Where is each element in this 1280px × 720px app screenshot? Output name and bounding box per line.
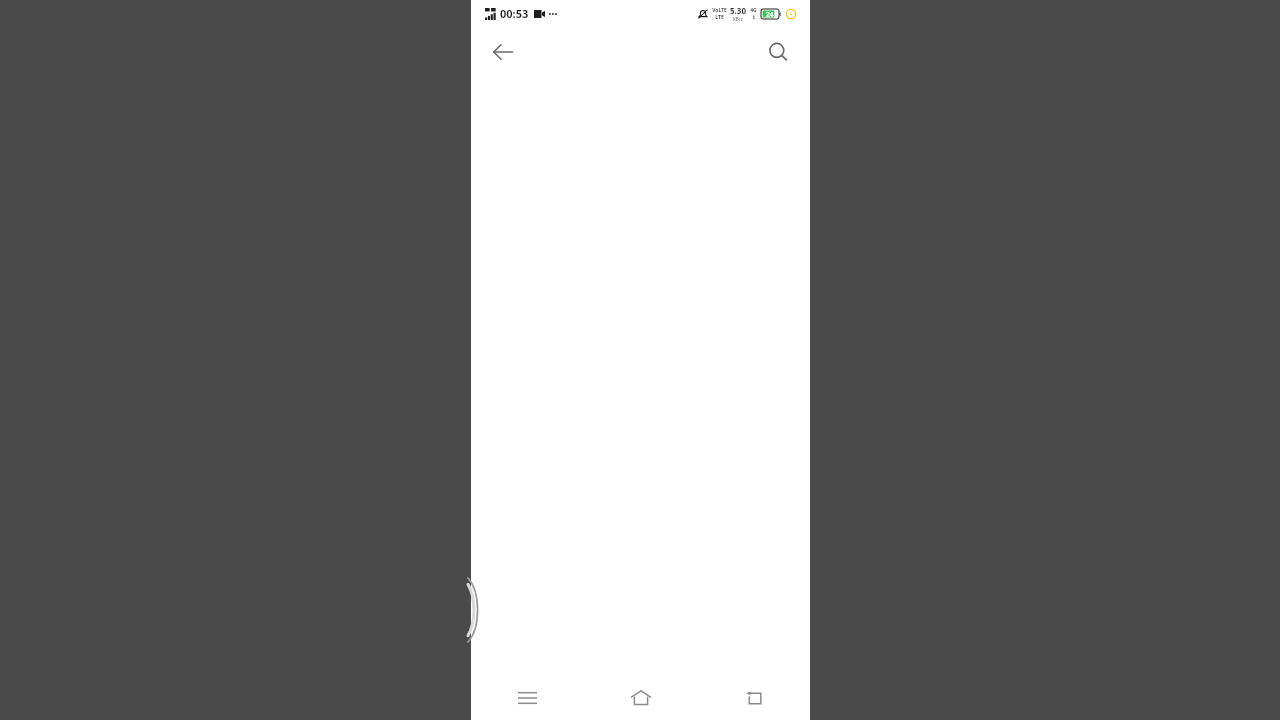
staticText: 24 <box>766 10 774 19</box>
button[interactable]: Home <box>584 676 697 720</box>
button[interactable]: Search <box>756 30 800 74</box>
staticText: 4G <box>750 7 757 14</box>
staticText: ↕ <box>751 14 756 20</box>
staticText: 5.30 <box>730 5 746 16</box>
staticText: LTE <box>715 14 724 21</box>
staticText: 00:53 <box>500 6 529 21</box>
button[interactable]: Recent apps <box>471 676 584 720</box>
staticText: KB/s <box>733 16 743 22</box>
button[interactable]: Back <box>481 30 525 74</box>
staticText: VoLTE <box>712 7 727 14</box>
button[interactable]: Back <box>697 676 810 720</box>
